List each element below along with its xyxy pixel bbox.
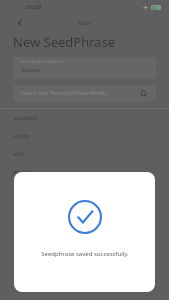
- button[interactable]: about: [0, 163, 169, 181]
- staticText: Search Your Recovery Phrase Words...: [21, 90, 110, 97]
- staticText: Solana: [21, 66, 40, 74]
- staticText: about: [13, 168, 30, 176]
- staticText: New SeedPhrase: [13, 33, 116, 51]
- button[interactable]: Your Blockchain Name: [13, 57, 156, 79]
- staticText: Your Blockchain Name: [21, 59, 64, 64]
- button[interactable]: Search Your Recovery Phrase Words...: [13, 85, 156, 102]
- staticText: ability: [13, 132, 30, 140]
- button[interactable]: Search: [138, 88, 150, 100]
- staticText: Seedphrase saved successfully.: [41, 250, 129, 258]
- staticText: Back: [78, 19, 92, 27]
- staticText: 09:28: [26, 3, 42, 11]
- button[interactable]: Seedphrase saved successfully.: [14, 172, 155, 292]
- staticText: able: [13, 150, 25, 158]
- button[interactable]: Back: [12, 15, 28, 31]
- staticText: abandon: [13, 114, 39, 122]
